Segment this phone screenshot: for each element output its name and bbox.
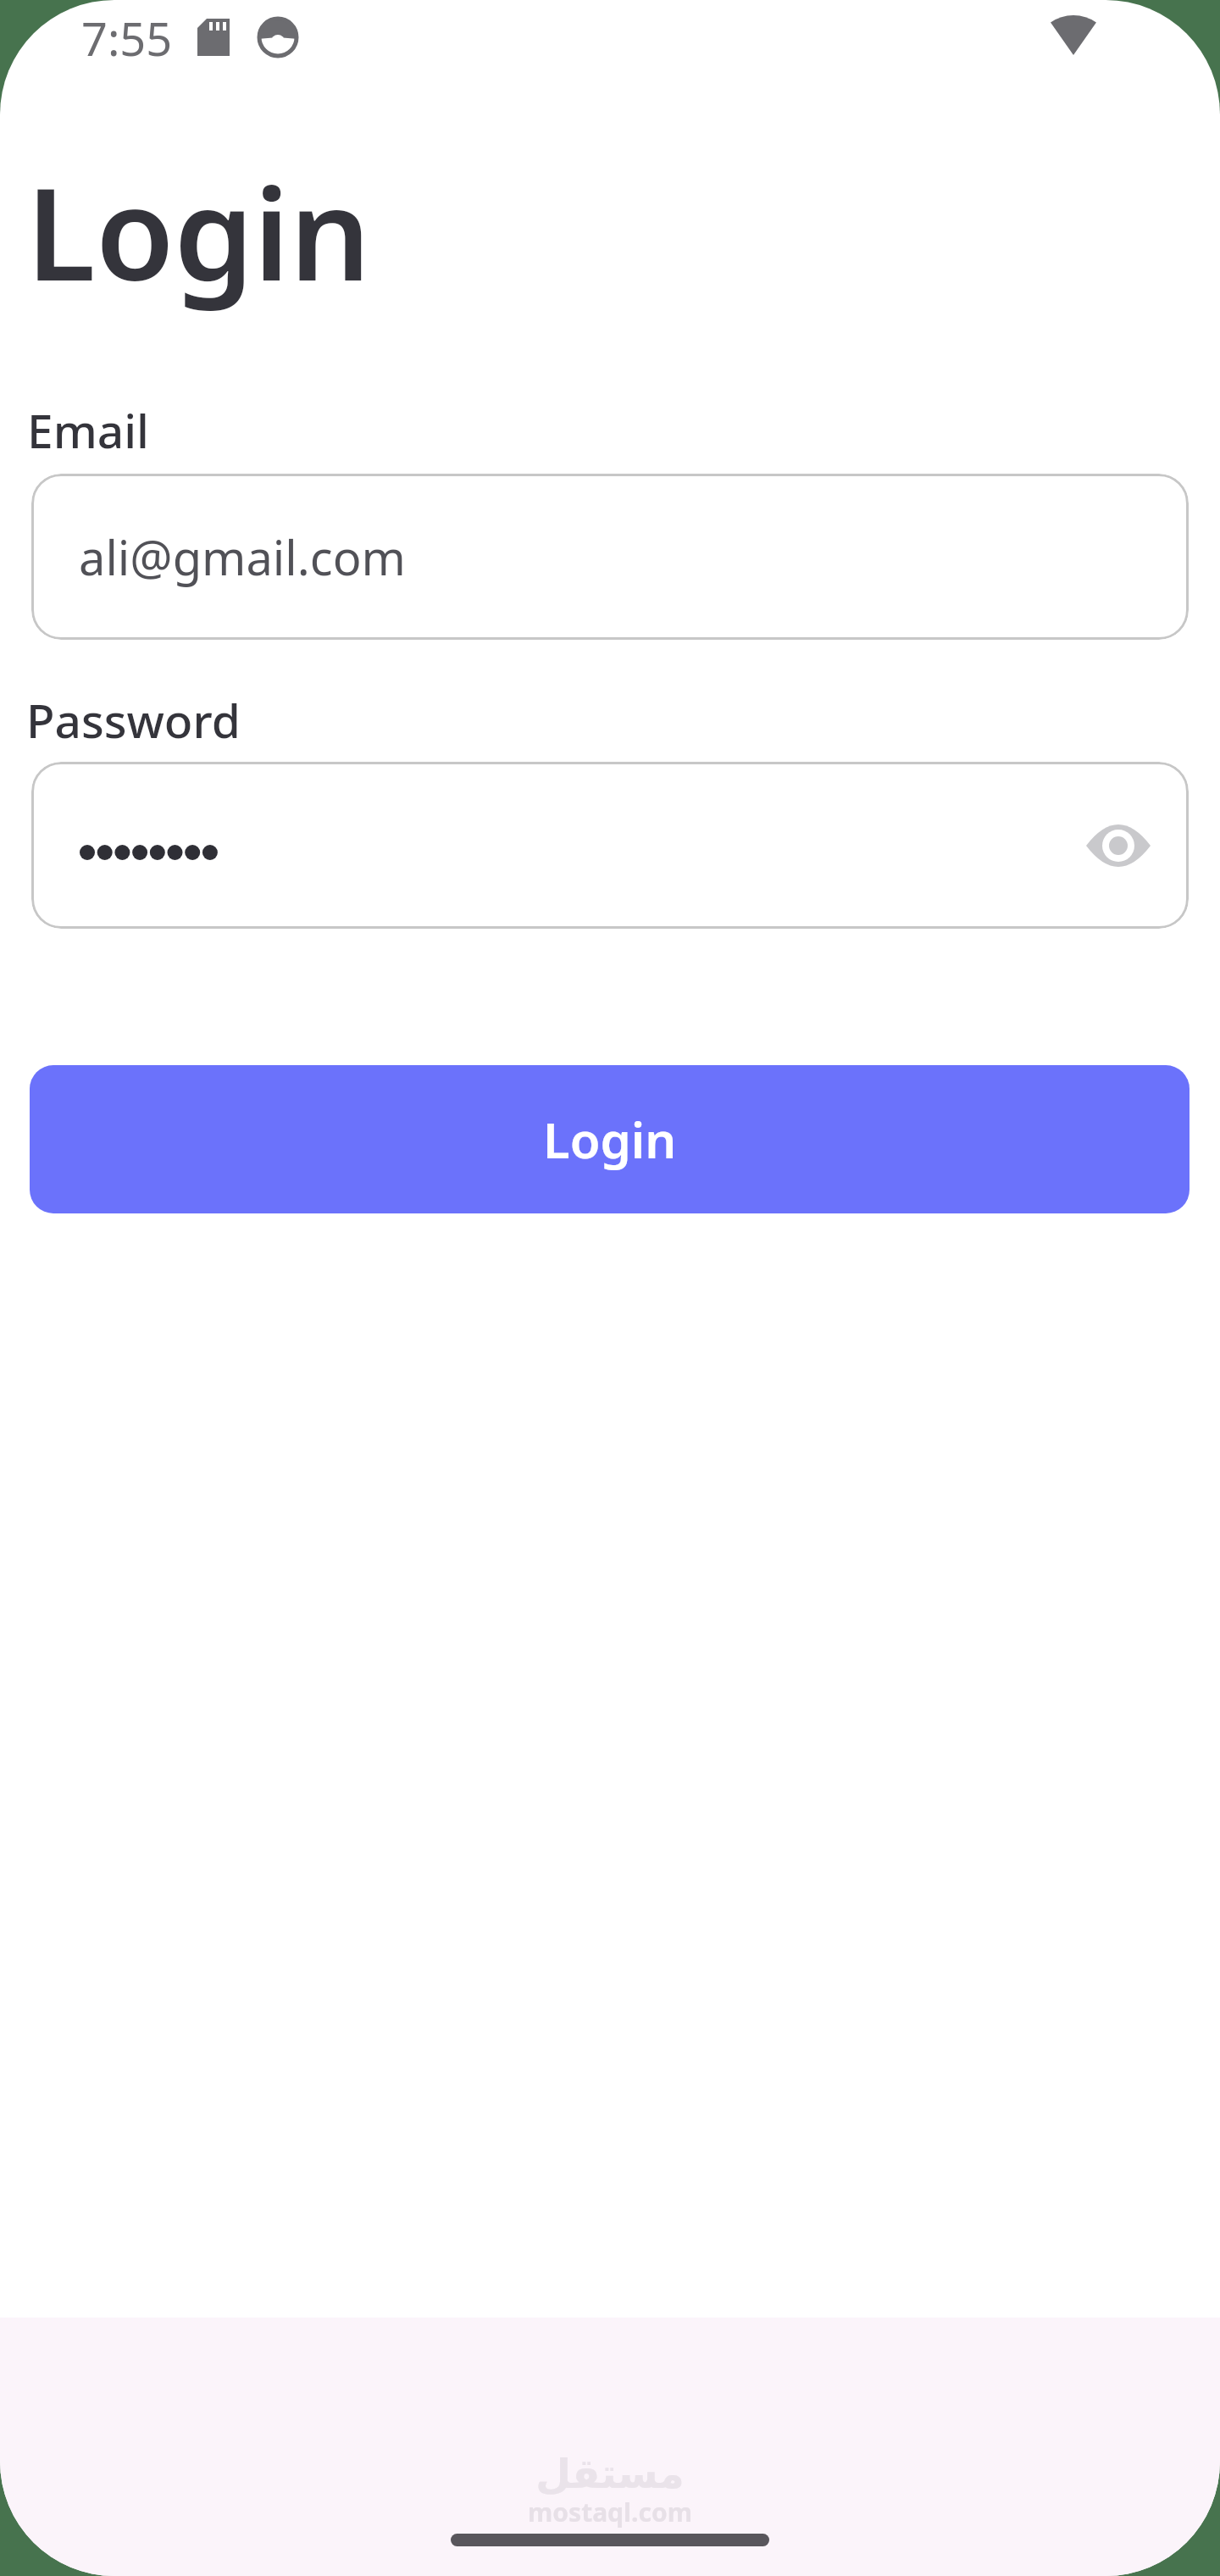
staticText: مستقل — [0, 2450, 1220, 2497]
staticText: Password — [26, 688, 241, 752]
staticText: Login — [26, 145, 371, 318]
staticText: ali@gmail.com — [79, 525, 406, 589]
staticText: 7:55 — [81, 7, 173, 69]
button[interactable]: Login — [30, 1065, 1189, 1213]
staticText: Email — [27, 398, 149, 462]
button[interactable] — [31, 762, 1189, 929]
staticText: Login — [543, 1106, 677, 1173]
staticText: mostaql.com — [0, 2495, 1220, 2529]
button[interactable] — [1078, 805, 1159, 886]
button[interactable]: ali@gmail.com — [31, 474, 1189, 640]
